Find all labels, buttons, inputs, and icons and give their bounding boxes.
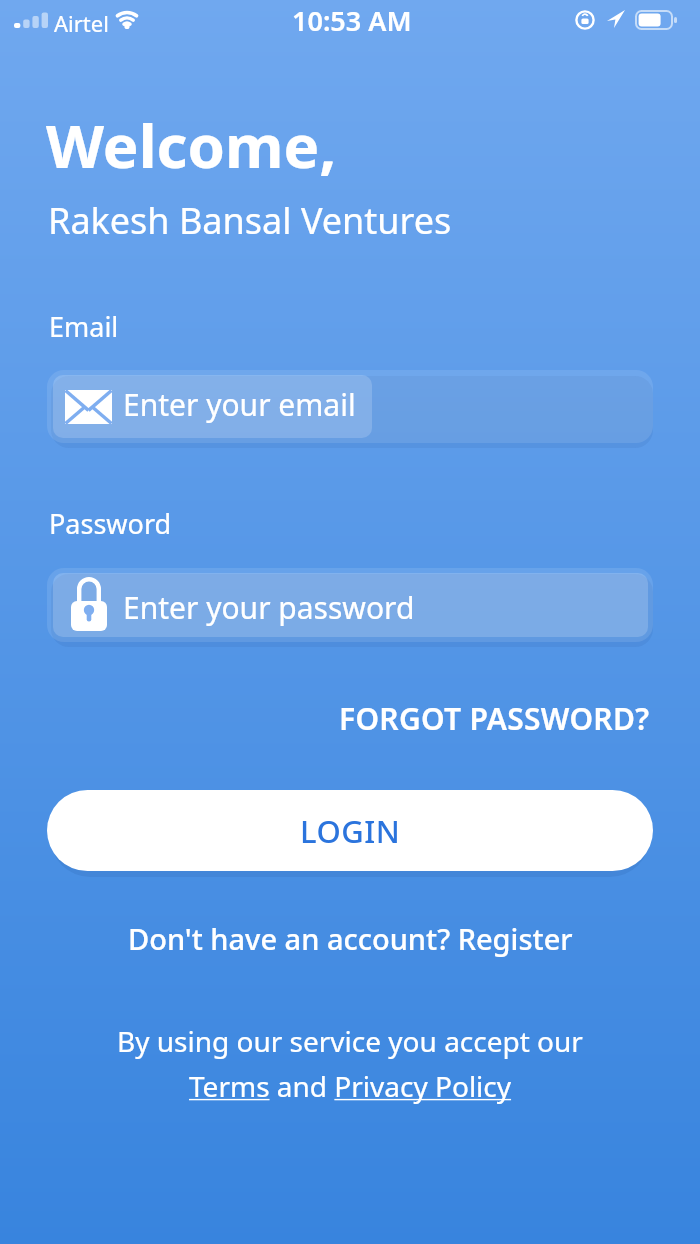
staticText: Welcome,: [46, 104, 337, 186]
staticText: Airtel: [54, 8, 109, 38]
button[interactable]: Enter your password: [47, 568, 653, 642]
staticText: Rakesh Bansal Ventures: [48, 196, 452, 245]
staticText: Email: [49, 308, 119, 345]
staticText: Enter your password: [123, 587, 415, 628]
button[interactable]: Don't have an account? Register: [0, 919, 700, 958]
button[interactable]: Terms and Privacy Policy: [0, 1067, 700, 1105]
staticText: By using our service you accept our: [117, 1022, 583, 1060]
staticText: 10:53 AM: [292, 2, 412, 39]
staticText: LOGIN: [300, 810, 401, 852]
staticText: Enter your email: [123, 384, 356, 425]
staticText: Don't have an account? Register: [128, 919, 573, 958]
staticText: Password: [49, 505, 172, 542]
button[interactable]: LOGIN: [47, 790, 653, 871]
button[interactable]: FORGOT PASSWORD?: [339, 698, 650, 739]
staticText: FORGOT PASSWORD?: [339, 698, 650, 739]
staticText: Terms and Privacy Policy: [189, 1067, 512, 1105]
button[interactable]: Enter your email: [47, 370, 653, 443]
